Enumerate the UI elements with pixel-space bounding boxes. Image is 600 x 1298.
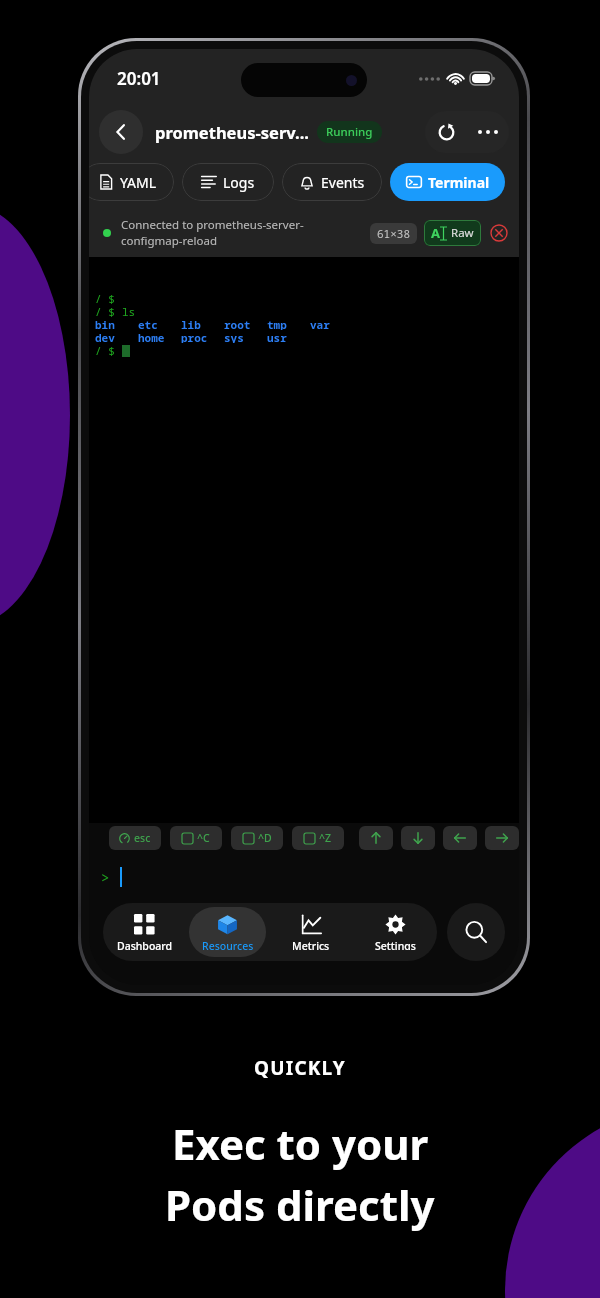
staticText: Exec to your xyxy=(172,1115,429,1172)
staticText: Events xyxy=(321,173,365,192)
staticText: ^C xyxy=(197,831,210,845)
staticText: / $ xyxy=(95,304,122,317)
staticText: Dashboard xyxy=(117,939,173,950)
staticText: proc xyxy=(181,330,208,343)
button[interactable]: YAML xyxy=(89,163,174,201)
button[interactable]: ^C xyxy=(170,826,222,850)
staticText: lib xyxy=(181,317,201,330)
staticText: > xyxy=(101,868,110,887)
button[interactable]: Left xyxy=(443,826,477,850)
staticText: ^D xyxy=(258,831,272,845)
staticText: ^Z xyxy=(319,831,332,845)
staticText: / $ xyxy=(95,343,122,358)
staticText: prometheus-serv... xyxy=(155,121,309,143)
button[interactable]: Down xyxy=(401,826,435,850)
staticText: Terminal xyxy=(428,173,490,192)
button[interactable]: ^Z xyxy=(292,826,344,850)
staticText: / $ xyxy=(95,291,115,304)
button[interactable]: ^D xyxy=(231,826,283,850)
staticText: sys xyxy=(224,330,244,343)
staticText: Resources xyxy=(202,939,254,950)
button[interactable]: Up xyxy=(359,826,393,850)
staticText: Metrics xyxy=(292,939,330,950)
staticText: bin xyxy=(95,317,115,330)
staticText: ls xyxy=(122,304,136,317)
staticText: Raw xyxy=(451,225,474,241)
staticText: YAML xyxy=(120,173,157,192)
button[interactable]: esc xyxy=(109,826,161,850)
staticText: Settings xyxy=(375,939,416,950)
staticText: Running xyxy=(326,124,373,140)
staticText: home xyxy=(138,330,165,343)
staticText: root xyxy=(224,317,251,330)
button[interactable]: More options xyxy=(467,111,509,153)
button[interactable]: Logs xyxy=(182,163,274,201)
button[interactable]: Events xyxy=(282,163,382,201)
staticText: QUICKLY xyxy=(254,1055,346,1081)
button[interactable]: Settings xyxy=(356,907,434,957)
staticText: Logs xyxy=(223,173,255,192)
button[interactable]: Terminal xyxy=(390,163,505,201)
staticText: Pods directly xyxy=(165,1176,435,1233)
staticText: tmp xyxy=(267,317,287,330)
button[interactable]: Right xyxy=(485,826,519,850)
button[interactable]: Disconnect xyxy=(489,223,509,243)
staticText: usr xyxy=(267,330,287,343)
button[interactable]: A xyxy=(424,220,481,246)
button[interactable]: Search xyxy=(447,903,505,961)
staticText: etc xyxy=(138,317,158,330)
button[interactable]: Back xyxy=(99,110,143,154)
staticText: A xyxy=(431,224,440,242)
staticText: 20:01 xyxy=(117,67,161,90)
staticText: Connected to prometheus-server- xyxy=(121,217,304,233)
button[interactable]: Dashboard xyxy=(106,907,183,957)
button[interactable]: Metrics xyxy=(272,907,350,957)
button[interactable]: Refresh xyxy=(425,111,467,153)
staticText: 61×38 xyxy=(377,226,410,241)
staticText: dev xyxy=(95,330,115,343)
staticText: var xyxy=(310,317,330,330)
staticText: esc xyxy=(134,831,151,845)
button[interactable]: Resources xyxy=(189,907,266,957)
staticText: configmap-reload xyxy=(121,233,218,249)
